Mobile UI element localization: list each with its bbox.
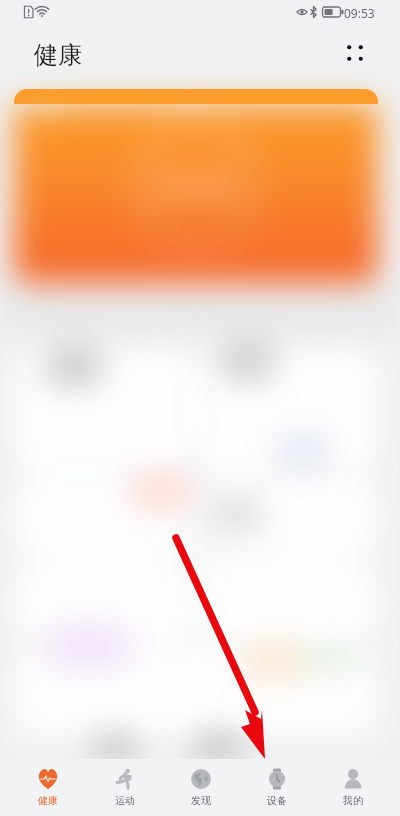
- button[interactable]: 设备: [239, 759, 315, 816]
- staticText: 09:53: [344, 5, 375, 21]
- staticText: 健康: [38, 794, 58, 807]
- button[interactable]: More: [336, 34, 374, 72]
- staticText: 健康: [34, 40, 82, 70]
- staticText: 设备: [267, 794, 287, 807]
- button[interactable]: 8246: [14, 89, 378, 283]
- staticText: 我的: [343, 794, 363, 807]
- staticText: 步数: [32, 103, 58, 119]
- button[interactable]: 运动: [86, 759, 163, 816]
- staticText: 发现: [191, 794, 211, 807]
- button[interactable]: 健康: [9, 759, 86, 816]
- button[interactable]: 我的: [315, 759, 391, 816]
- staticText: 8246: [157, 163, 235, 209]
- button[interactable]: 发现: [163, 759, 239, 816]
- staticText: 运动: [115, 794, 135, 807]
